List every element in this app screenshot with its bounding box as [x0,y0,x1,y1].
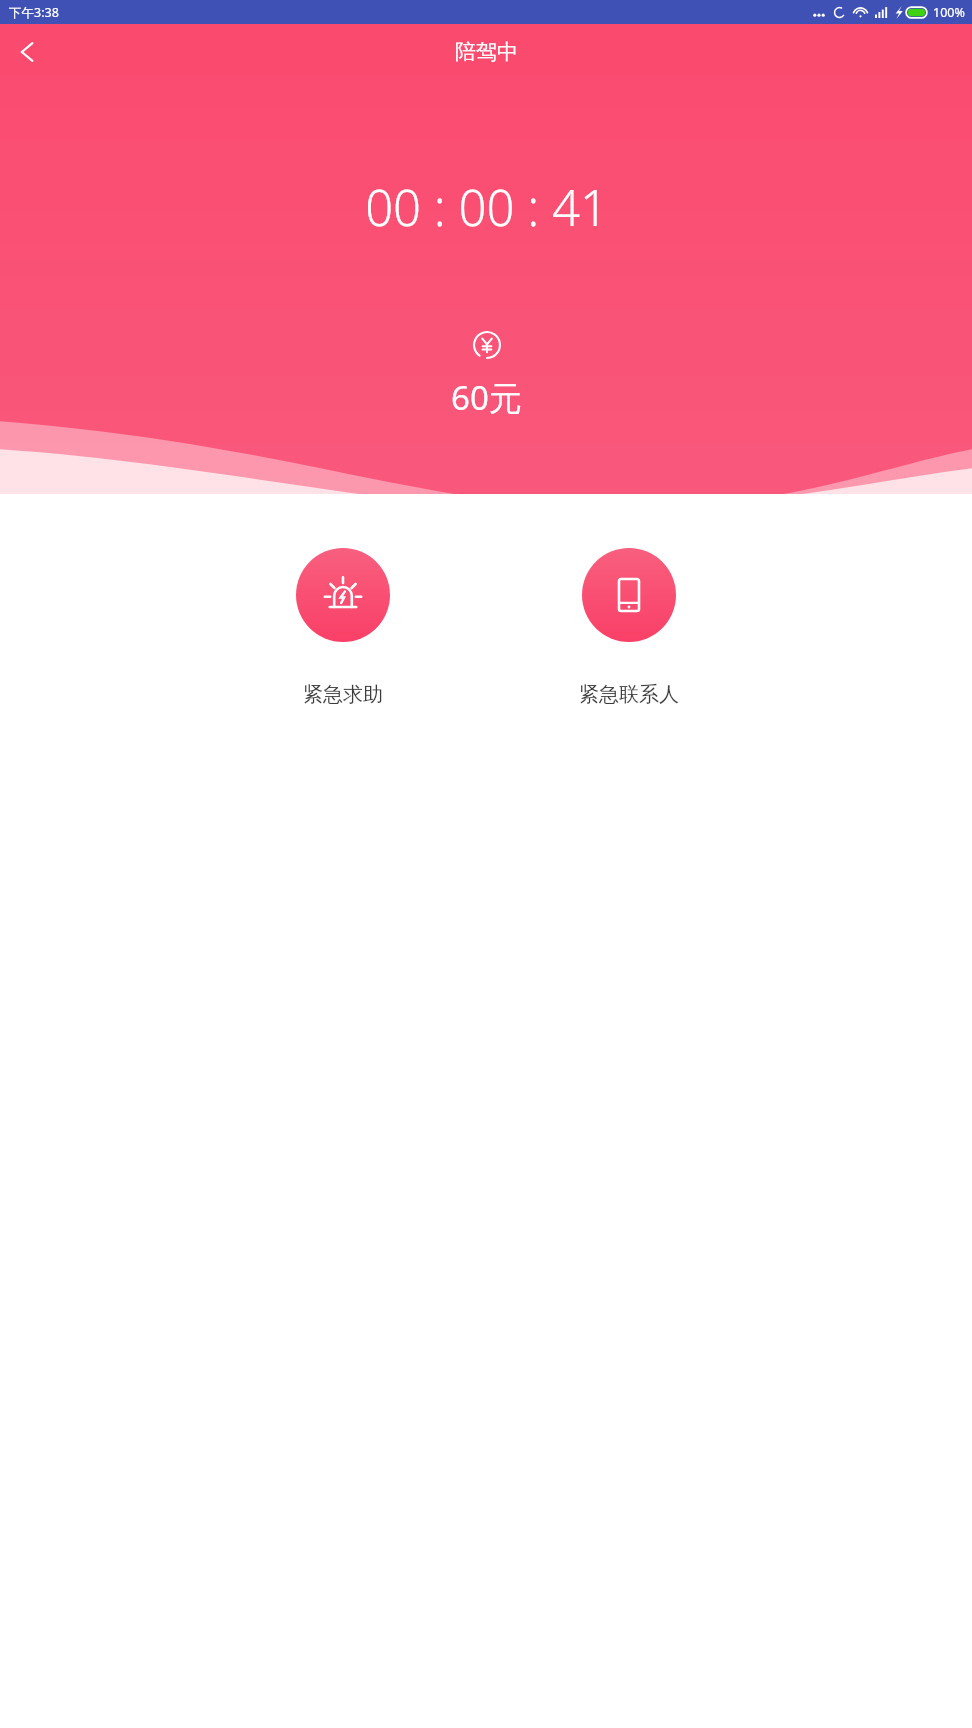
staticText: 紧急联系人 [579,682,679,707]
staticText: 紧急求助 [303,682,383,707]
staticText: 下午3:38 [9,4,59,21]
button[interactable]: Emergency help [273,548,413,707]
staticText: 60元 [451,375,522,420]
staticText: 00 : 00 : 41 [365,174,608,241]
button[interactable]: Back [0,24,56,80]
button[interactable]: Emergency contact [559,548,699,707]
staticText: 100% [933,4,965,21]
staticText: 陪驾中 [455,39,518,65]
